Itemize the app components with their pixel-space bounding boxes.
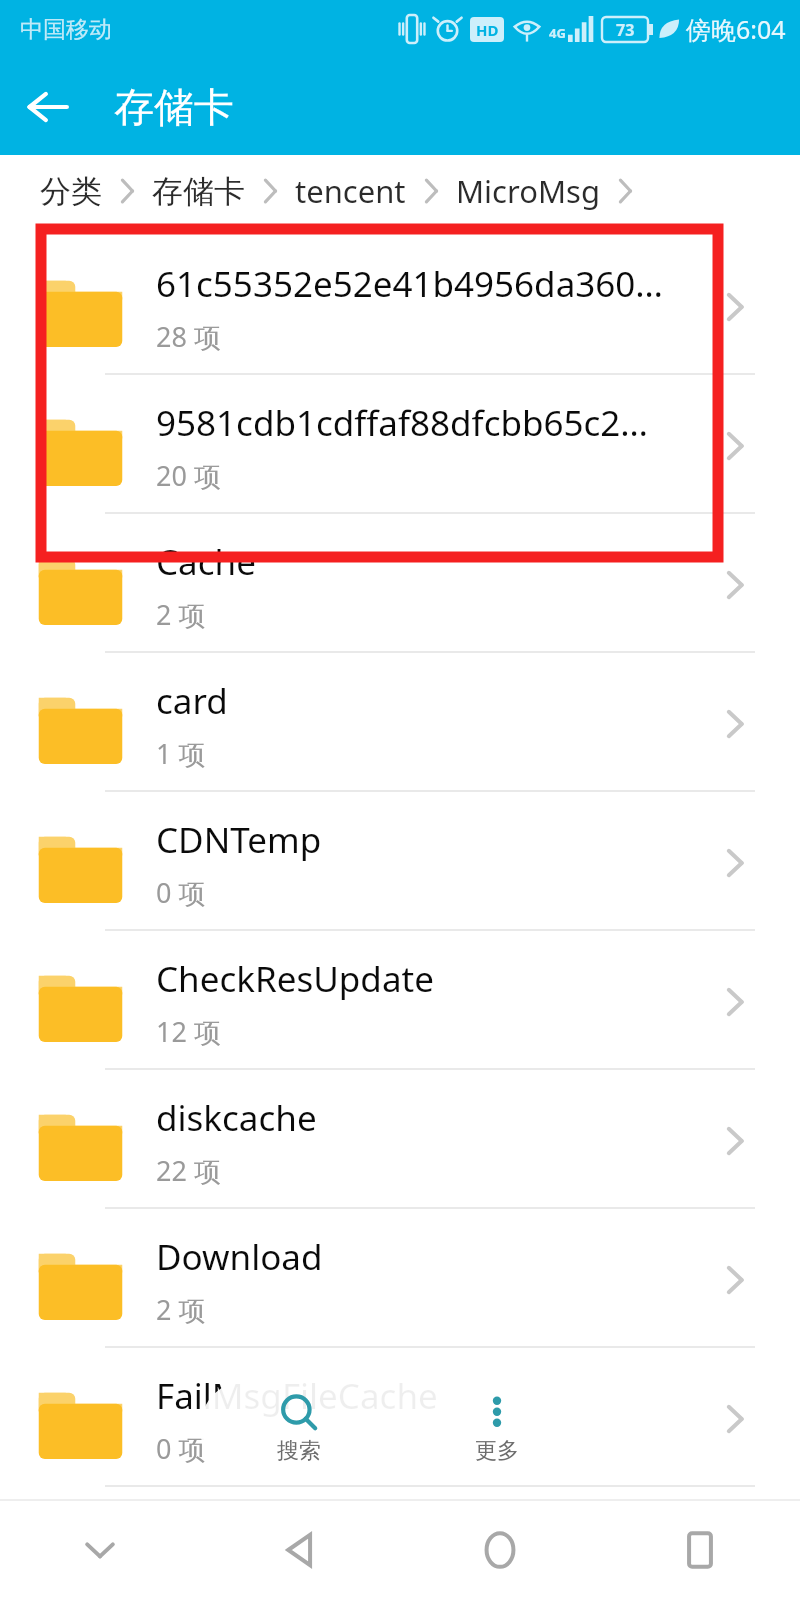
staticText: 搜索	[277, 1437, 321, 1465]
staticText: 更多	[475, 1437, 519, 1465]
staticText: MicroMsg	[456, 170, 600, 212]
button[interactable]: diskcache	[0, 1070, 800, 1209]
staticText: 22 项	[156, 1152, 221, 1189]
staticText: 2 项	[156, 1291, 206, 1328]
staticText: 9581cdb1cdffaf88dfcbb65c2…	[156, 399, 696, 447]
staticText: 存储卡	[114, 82, 234, 132]
staticText: 4G	[549, 24, 566, 42]
staticText: 傍晚6:04	[686, 12, 786, 46]
staticText: 61c55352e52e41b4956da360…	[156, 260, 696, 308]
staticText: Download	[156, 1233, 696, 1281]
staticText: 2 项	[156, 596, 206, 633]
staticText: 28 项	[156, 318, 221, 355]
button[interactable]: 9581cdb1cdffaf88dfcbb65c2…	[0, 375, 800, 514]
staticText: 73	[616, 19, 635, 41]
button[interactable]: Recents	[600, 1500, 800, 1600]
button[interactable]: 存储卡	[150, 168, 247, 215]
staticText: 0 项	[156, 1430, 206, 1467]
staticText: 20 项	[156, 457, 221, 494]
staticText: CDNTemp	[156, 816, 696, 864]
button[interactable]: 61c55352e52e41b4956da360…	[0, 236, 800, 375]
button[interactable]: CDNTemp	[0, 792, 800, 931]
staticText: 0 项	[156, 874, 206, 911]
staticText: 分类	[40, 172, 102, 211]
button[interactable]: Back	[200, 1500, 400, 1600]
staticText: FailMsgFileCache	[156, 1372, 696, 1420]
staticText: 1 项	[156, 735, 206, 772]
staticText: diskcache	[156, 1094, 696, 1142]
button[interactable]: Back	[0, 59, 96, 155]
button[interactable]: Download	[0, 1209, 800, 1348]
staticText: Cache	[156, 538, 696, 586]
button[interactable]: MicroMsg	[454, 166, 602, 216]
button[interactable]: CheckResUpdate	[0, 931, 800, 1070]
button[interactable]: tencent	[293, 166, 408, 216]
button[interactable]: Home	[400, 1500, 600, 1600]
staticText: CheckResUpdate	[156, 955, 696, 1003]
staticText: card	[156, 677, 696, 725]
staticText: 存储卡	[152, 172, 245, 211]
button[interactable]: 分类	[38, 168, 104, 215]
button[interactable]: card	[0, 653, 800, 792]
button[interactable]: Cache	[0, 514, 800, 653]
staticText: HD	[476, 20, 499, 40]
staticText: 12 项	[156, 1013, 221, 1050]
staticText: tencent	[295, 170, 406, 212]
button[interactable]: FailMsgFileCache	[0, 1348, 800, 1487]
button[interactable]: 更多	[398, 1391, 596, 1465]
button[interactable]: 搜索	[200, 1391, 398, 1465]
button[interactable]: Hide	[0, 1500, 200, 1600]
staticText: 中国移动	[20, 15, 112, 44]
